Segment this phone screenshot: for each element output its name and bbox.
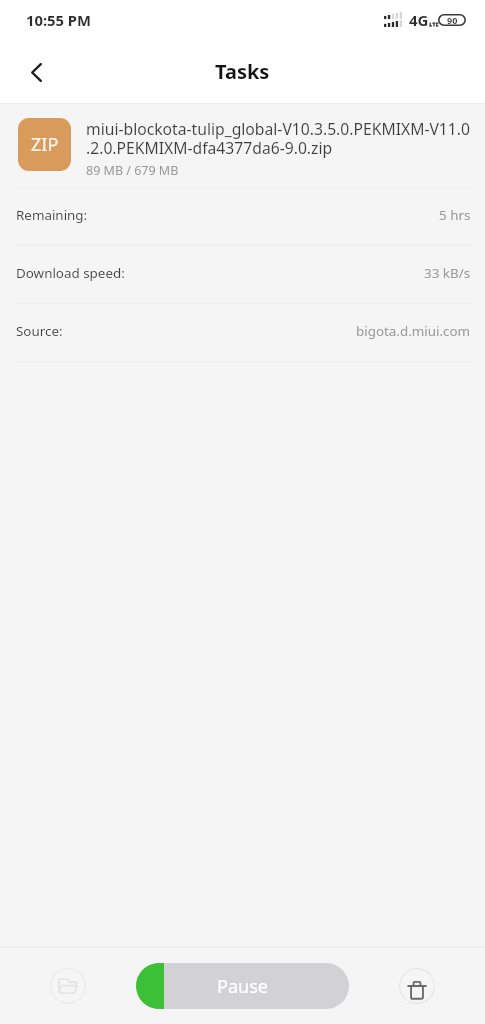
staticText: Download speed:: [16, 264, 125, 282]
staticText: 33 kB/s: [424, 264, 471, 282]
staticText: Pause: [217, 974, 268, 999]
staticText: Remaining:: [16, 206, 88, 224]
staticText: Tasks: [215, 58, 270, 85]
staticText: bigota.d.miui.com: [356, 322, 471, 340]
button[interactable]: Source:: [0, 304, 485, 361]
button[interactable]: Remaining:: [0, 188, 485, 245]
button[interactable]: Open folder: [50, 968, 86, 1004]
button[interactable]: Pause: [136, 963, 349, 1009]
staticText: 90: [447, 14, 458, 26]
button[interactable]: Delete: [399, 968, 435, 1004]
staticText: miui-blockota-tulip_global-V10.3.5.0.PEK…: [86, 118, 470, 159]
staticText: 5 hrs: [439, 206, 471, 224]
button[interactable]: Back: [16, 52, 56, 92]
button[interactable]: Download speed:: [0, 246, 485, 303]
staticText: 89 MB / 679 MB: [86, 162, 179, 179]
staticText: 4G: [409, 10, 429, 30]
staticText: ZIP: [31, 132, 59, 157]
staticText: 10:55 PM: [26, 10, 92, 30]
staticText: Source:: [16, 322, 63, 340]
